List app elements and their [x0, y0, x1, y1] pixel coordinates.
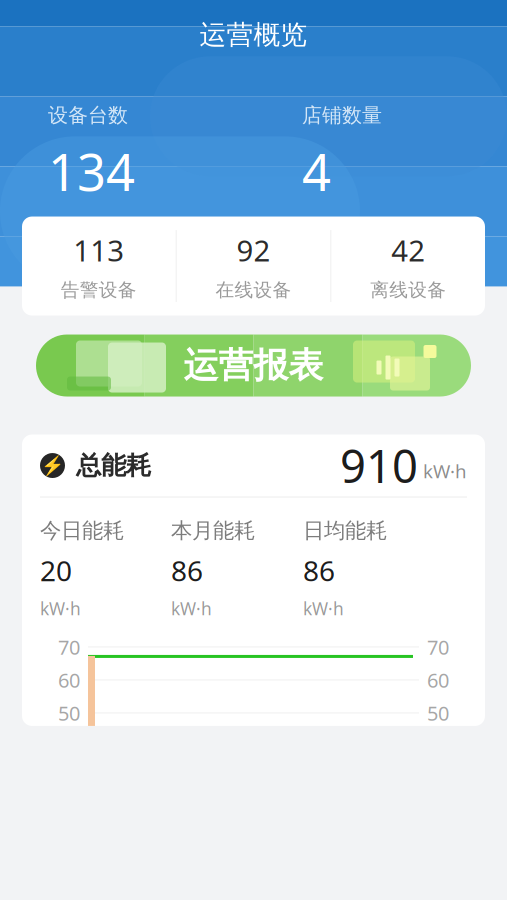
- button[interactable]: 42: [331, 216, 485, 315]
- staticText: 运营报表: [183, 344, 323, 387]
- staticText: 在线设备: [215, 278, 291, 301]
- staticText: 50: [427, 700, 449, 726]
- staticText: kW·h: [303, 597, 344, 620]
- staticText: 离线设备: [370, 278, 446, 301]
- staticText: kW·h: [423, 459, 467, 483]
- staticText: 86: [303, 552, 335, 589]
- staticText: 店铺数量: [302, 103, 382, 128]
- staticText: 86: [171, 552, 203, 589]
- staticText: 20: [40, 552, 72, 589]
- staticText: 60: [58, 667, 80, 693]
- staticText: 告警设备: [61, 278, 137, 301]
- staticText: 60: [427, 667, 449, 693]
- staticText: 今日能耗: [40, 517, 124, 544]
- staticText: 总能耗: [76, 450, 151, 481]
- staticText: ⚡: [41, 455, 64, 476]
- staticText: 92: [236, 231, 270, 270]
- staticText: kW·h: [40, 597, 81, 620]
- staticText: 本月能耗: [171, 517, 255, 544]
- staticText: 113: [73, 231, 124, 270]
- staticText: 4: [302, 138, 331, 205]
- staticText: 134: [48, 138, 135, 205]
- staticText: kW·h: [171, 597, 212, 620]
- staticText: 70: [427, 634, 449, 660]
- staticText: 50: [58, 700, 80, 726]
- staticText: 910: [340, 435, 418, 496]
- staticText: 42: [391, 231, 425, 270]
- staticText: 运营概览: [199, 18, 307, 51]
- staticText: 设备台数: [48, 103, 128, 128]
- staticText: 70: [58, 634, 80, 660]
- button[interactable]: 92: [177, 216, 330, 315]
- staticText: 日均能耗: [303, 517, 387, 544]
- button[interactable]: 113: [22, 216, 176, 315]
- button[interactable]: 运营报表: [0, 334, 507, 396]
